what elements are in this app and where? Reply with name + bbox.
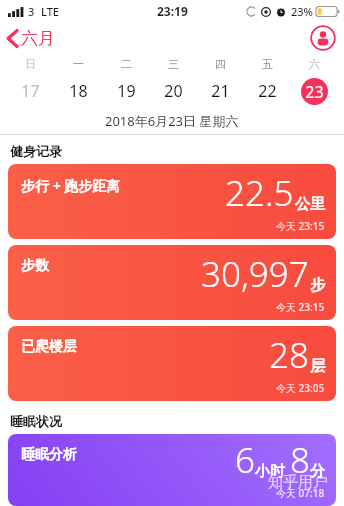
staticText: 六 <box>309 57 320 71</box>
button[interactable]: 17 <box>6 74 54 108</box>
staticText: 一 <box>73 57 84 71</box>
staticText: 睡眠分析 <box>21 446 77 464</box>
staticText: 健身记录 <box>10 143 62 159</box>
staticText: 28 <box>269 331 309 379</box>
button[interactable]: 六月 <box>0 26 63 51</box>
staticText: 今天 23:15 <box>276 300 325 314</box>
staticText: 23 <box>305 81 324 103</box>
staticText: 六月 <box>21 28 55 49</box>
staticText: 3 <box>28 4 35 19</box>
staticText: 今天 23:15 <box>276 219 325 233</box>
staticText: 23% <box>291 4 313 19</box>
button[interactable]: 21 <box>197 74 244 108</box>
button[interactable]: 步数 <box>8 245 336 320</box>
staticText: 2018年6月23日 星期六 <box>105 112 239 130</box>
staticText: 日 <box>25 57 36 71</box>
button[interactable]: 睡眠分析 <box>8 434 336 506</box>
staticText: 公里 <box>295 195 325 214</box>
staticText: 21 <box>211 80 230 102</box>
staticText: 8 <box>290 436 310 484</box>
staticText: 17 <box>21 80 40 102</box>
button[interactable]: 18 <box>54 74 102 108</box>
staticText: 二 <box>121 57 132 71</box>
staticText: 睡眠状况 <box>10 413 62 429</box>
button[interactable]: 已爬楼层 <box>8 326 336 401</box>
staticText: 步数 <box>21 257 49 275</box>
button[interactable]: 19 <box>102 74 150 108</box>
button[interactable]: Profile <box>310 25 336 51</box>
staticText: 分 <box>310 462 325 481</box>
staticText: 18 <box>69 80 88 102</box>
staticText: 小时 <box>255 462 285 481</box>
staticText: 已爬楼层 <box>21 338 77 356</box>
staticText: 三 <box>168 57 179 71</box>
staticText: 30,997 <box>201 250 309 298</box>
staticText: 22.5 <box>225 169 294 217</box>
button[interactable]: 22 <box>244 74 291 108</box>
staticText: 今天 07:18 <box>276 486 325 500</box>
staticText: 22 <box>258 80 277 102</box>
staticText: 19 <box>117 80 136 102</box>
staticText: 知乎用户 <box>268 473 328 492</box>
staticText: 23:19 <box>157 3 188 19</box>
staticText: 今天 23:05 <box>276 381 325 395</box>
staticText: 层 <box>310 357 325 376</box>
button[interactable]: 步行 + 跑步距离 <box>8 164 336 239</box>
staticText: 步 <box>310 276 325 295</box>
staticText: 四 <box>215 57 226 71</box>
staticText: 6 <box>235 436 255 484</box>
staticText: LTE <box>41 4 59 19</box>
staticText: 五 <box>262 57 273 71</box>
staticText: 步行 + 跑步距离 <box>21 176 121 195</box>
button[interactable]: 23 <box>291 74 338 108</box>
button[interactable]: 20 <box>150 74 197 108</box>
staticText: 20 <box>164 80 183 102</box>
